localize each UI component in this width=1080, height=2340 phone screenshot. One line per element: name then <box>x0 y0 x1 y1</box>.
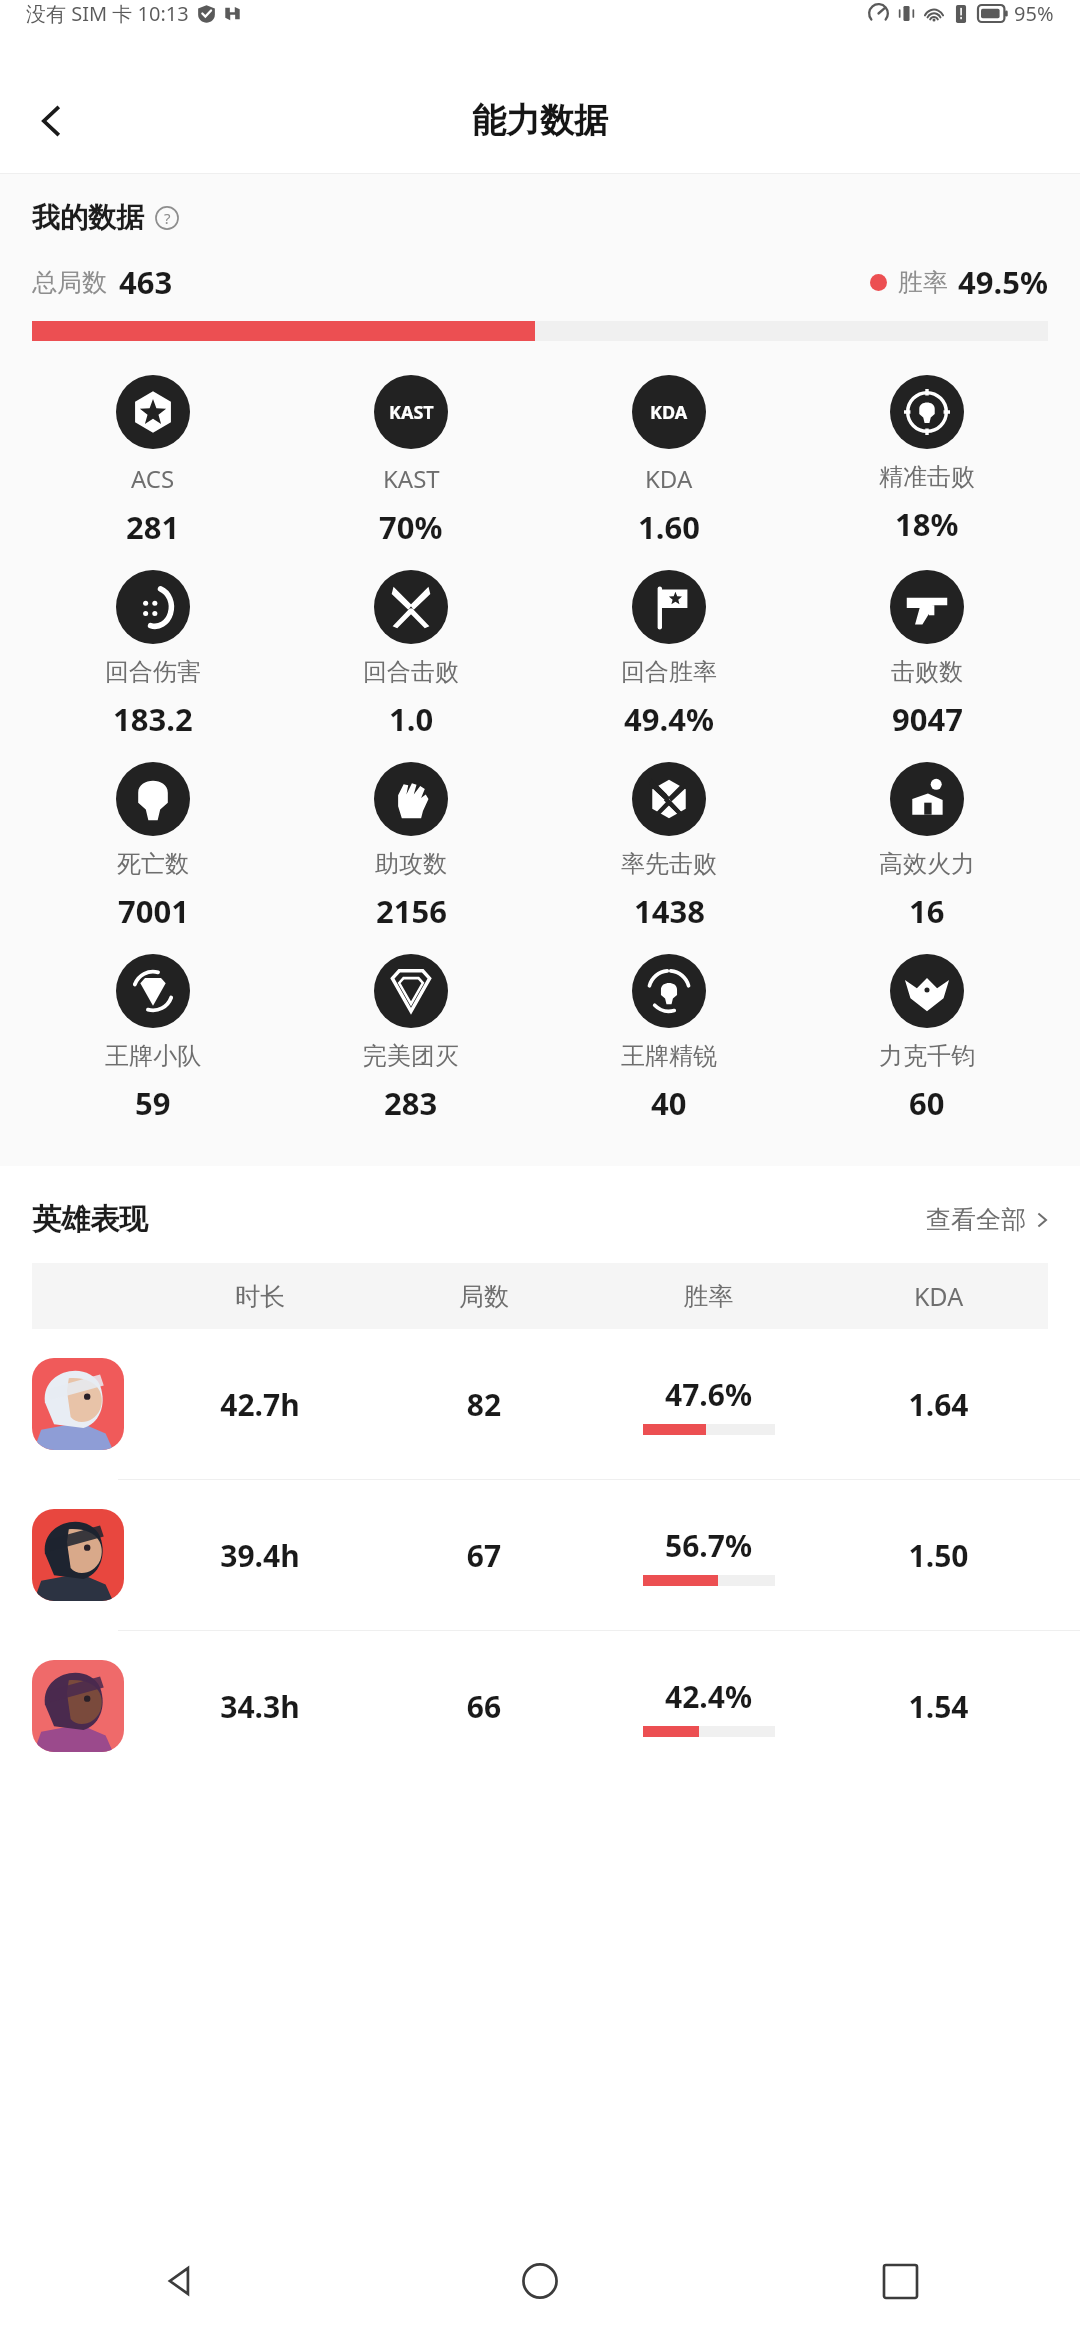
staticText: ACS <box>131 462 175 495</box>
button[interactable]: KAST <box>282 375 540 548</box>
staticText: 82 <box>380 1384 588 1425</box>
staticText: 英雄表现 <box>32 1201 148 1238</box>
staticText: 总局数 <box>32 267 107 298</box>
staticText: 59 <box>135 1082 171 1124</box>
staticText: 1.54 <box>829 1686 1048 1727</box>
staticText: KDA <box>645 462 693 495</box>
staticText: 40 <box>651 1082 687 1124</box>
staticText: KAST <box>389 400 434 425</box>
staticText: 完美团灭 <box>363 1041 459 1071</box>
staticText: 7001 <box>118 890 189 932</box>
button[interactable]: 力克千钧 <box>798 954 1056 1124</box>
button[interactable]: 42.7h <box>0 1329 1080 1479</box>
button[interactable]: 最近任务 <box>720 2222 1080 2340</box>
staticText: 回合击败 <box>363 657 459 687</box>
staticText: 1.50 <box>829 1535 1048 1576</box>
staticText: KDA <box>650 400 688 425</box>
staticText: 9047 <box>892 698 963 740</box>
button[interactable]: 返回 <box>16 85 88 157</box>
staticText: 精准击败 <box>879 462 975 492</box>
button[interactable]: 高效火力 <box>798 762 1056 932</box>
staticText: 局数 <box>380 1281 588 1312</box>
staticText: 60 <box>909 1082 945 1124</box>
staticText: 18% <box>895 503 959 545</box>
staticText: 回合伤害 <box>105 657 201 687</box>
staticText: 胜率 <box>588 1281 829 1312</box>
staticText: 2156 <box>376 890 447 932</box>
staticText: 率先击败 <box>621 849 717 879</box>
staticText: 16 <box>909 890 945 932</box>
staticText: 95% <box>1014 0 1054 27</box>
button[interactable]: 39.4h <box>0 1480 1080 1630</box>
staticText: 我的数据 <box>32 200 144 235</box>
staticText: 39.4h <box>140 1535 380 1576</box>
staticText: KAST <box>383 462 440 495</box>
staticText: 能力数据 <box>472 99 608 142</box>
button[interactable]: 查看全部 <box>920 1198 1058 1241</box>
staticText: 时长 <box>140 1281 380 1312</box>
staticText: 胜率 <box>898 267 948 298</box>
button[interactable]: 击败数 <box>798 570 1056 740</box>
staticText: 34.3h <box>140 1686 380 1727</box>
button[interactable]: 返回 <box>0 2222 360 2340</box>
button[interactable]: 王牌精锐 <box>540 954 798 1124</box>
button[interactable]: 回合击败 <box>282 570 540 740</box>
staticText: KDA <box>829 1279 1048 1313</box>
staticText: 56.7% <box>665 1525 752 1566</box>
button[interactable]: 主屏幕 <box>360 2222 720 2340</box>
staticText: ? <box>164 208 171 228</box>
staticText: 击败数 <box>891 657 963 687</box>
staticText: 死亡数 <box>117 849 189 879</box>
staticText: 49.5% <box>958 261 1048 303</box>
button[interactable]: 34.3h <box>0 1631 1080 1781</box>
staticText: 283 <box>384 1082 438 1124</box>
staticText: 70% <box>379 506 443 548</box>
staticText: 463 <box>119 261 173 303</box>
staticText: 67 <box>380 1535 588 1576</box>
button[interactable]: ACS <box>24 375 282 548</box>
button[interactable]: 回合胜率 <box>540 570 798 740</box>
staticText: 49.4% <box>624 698 714 740</box>
staticText: 1.64 <box>829 1384 1048 1425</box>
button[interactable]: 死亡数 <box>24 762 282 932</box>
staticText: 42.7h <box>140 1384 380 1425</box>
staticText: 查看全部 <box>926 1204 1026 1235</box>
button[interactable]: 说明 <box>154 205 180 231</box>
staticText: 281 <box>126 506 180 548</box>
staticText: 1.60 <box>638 506 700 548</box>
staticText: 66 <box>380 1686 588 1727</box>
staticText: 高效火力 <box>879 849 975 879</box>
staticText: 183.2 <box>113 698 193 740</box>
button[interactable]: 助攻数 <box>282 762 540 932</box>
staticText: 王牌小队 <box>105 1041 201 1071</box>
button[interactable]: 精准击败 <box>798 375 1056 545</box>
staticText: 1.0 <box>389 698 434 740</box>
button[interactable]: 率先击败 <box>540 762 798 932</box>
staticText: 1438 <box>634 890 705 932</box>
button[interactable]: 回合伤害 <box>24 570 282 740</box>
staticText: 助攻数 <box>375 849 447 879</box>
staticText: 42.4% <box>665 1676 752 1717</box>
button[interactable]: KDA <box>540 375 798 548</box>
staticText: 回合胜率 <box>621 657 717 687</box>
staticText: 王牌精锐 <box>621 1041 717 1071</box>
button[interactable]: 王牌小队 <box>24 954 282 1124</box>
button[interactable]: 完美团灭 <box>282 954 540 1124</box>
staticText: 没有 SIM 卡 10:13 <box>26 0 189 27</box>
staticText: 47.6% <box>665 1374 752 1415</box>
staticText: 力克千钧 <box>879 1041 975 1071</box>
